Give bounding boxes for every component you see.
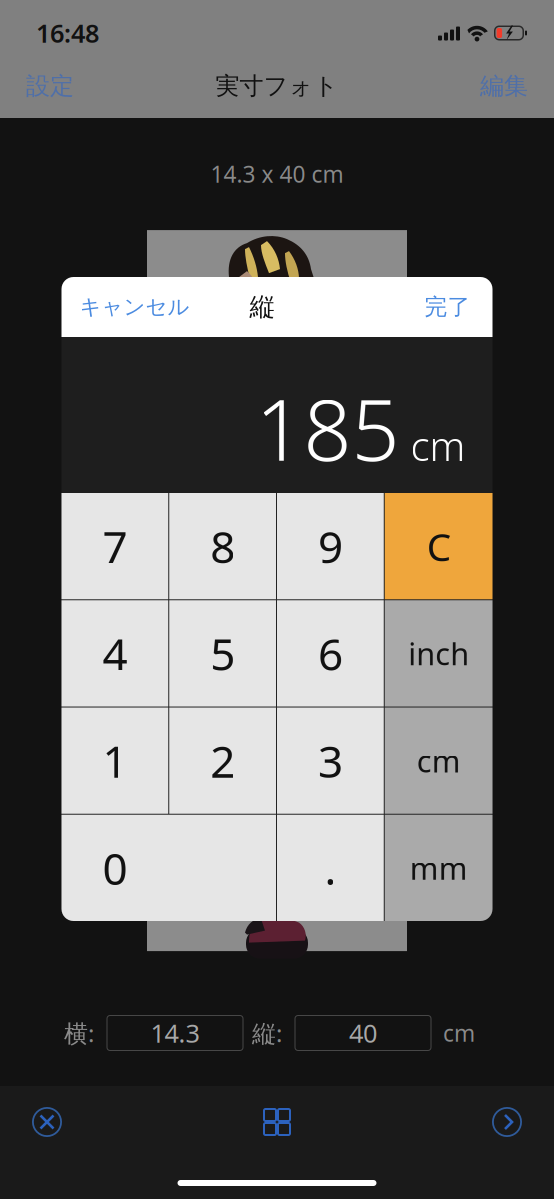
staticText: inch	[408, 633, 469, 674]
staticText: 編集	[480, 71, 528, 101]
staticText: 設定	[26, 71, 74, 101]
staticText: 0	[102, 839, 127, 897]
staticText: 完了	[424, 293, 470, 321]
staticText: 3	[318, 731, 343, 790]
button[interactable]: キャンセル	[75, 285, 193, 329]
button[interactable]: 編集	[475, 65, 533, 107]
button[interactable]: C	[385, 493, 493, 599]
staticText: 40	[349, 1016, 377, 1050]
staticText: 横:	[64, 1017, 94, 1049]
button[interactable]: 2	[169, 707, 276, 814]
staticText: 16:48	[36, 16, 99, 50]
staticText: C	[427, 520, 451, 572]
staticText: 9	[318, 517, 343, 575]
button[interactable]: 完了	[420, 284, 474, 330]
button[interactable]: 3	[277, 707, 384, 814]
staticText: cm	[417, 740, 461, 781]
staticText: .	[324, 839, 336, 897]
staticText: 1	[102, 731, 127, 790]
staticText: 2	[210, 731, 235, 790]
staticText: 5	[210, 624, 235, 683]
staticText: 14.3 x 40 cm	[210, 159, 343, 189]
staticText: キャンセル	[79, 294, 189, 320]
staticText: 8	[210, 517, 235, 575]
staticText: cm	[410, 419, 465, 472]
button[interactable]: 0	[61, 815, 276, 921]
button[interactable]: Next	[479, 1094, 535, 1150]
staticText: 7	[102, 517, 127, 575]
staticText: mm	[410, 847, 468, 888]
button[interactable]: 40	[295, 1015, 431, 1050]
button[interactable]: 5	[169, 600, 276, 706]
staticText: 縦	[249, 291, 274, 322]
staticText: cm	[443, 1018, 475, 1048]
staticText: 14.3	[150, 1016, 199, 1050]
button[interactable]: 4	[61, 600, 168, 706]
staticText: 縦:	[252, 1017, 282, 1049]
button[interactable]: mm	[385, 815, 493, 921]
button[interactable]: Grid	[249, 1094, 305, 1150]
button[interactable]: 6	[277, 600, 384, 706]
button[interactable]: 7	[61, 493, 168, 599]
button[interactable]: 9	[277, 493, 384, 599]
button[interactable]: .	[277, 815, 384, 921]
button[interactable]: 1	[61, 707, 168, 814]
button[interactable]: Close	[19, 1094, 75, 1150]
button[interactable]: cm	[385, 707, 493, 814]
staticText: 6	[318, 624, 343, 683]
button[interactable]: 14.3	[107, 1015, 243, 1050]
staticText: 185	[255, 372, 399, 484]
button[interactable]: 8	[169, 493, 276, 599]
button[interactable]: 設定	[21, 65, 79, 107]
staticText: 実寸フォト	[215, 71, 338, 101]
button[interactable]: inch	[385, 600, 493, 706]
staticText: 4	[102, 624, 127, 683]
